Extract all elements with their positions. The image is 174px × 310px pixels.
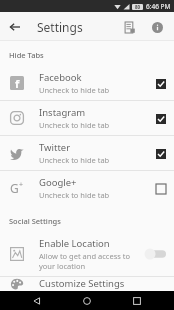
staticText: Allow to get and access to your location xyxy=(39,251,138,271)
staticText: Instagram xyxy=(39,106,86,119)
button[interactable]: Enable Location xyxy=(0,232,174,276)
button[interactable]: Checked xyxy=(155,78,166,89)
staticText: Google+ xyxy=(39,176,77,189)
staticText: Customize Settings xyxy=(39,277,125,290)
staticText: Social Settings xyxy=(9,216,61,226)
button[interactable]: Twitter xyxy=(0,136,174,170)
staticText: 6:46 PM xyxy=(146,2,171,11)
staticText: Hide Tabs xyxy=(9,50,44,60)
staticText: Facebook xyxy=(39,71,82,84)
staticText: Uncheck to hide tab xyxy=(39,120,110,130)
staticText: Uncheck to hide tab xyxy=(39,85,110,95)
staticText: 80 xyxy=(135,4,141,10)
staticText: G xyxy=(10,180,19,196)
button[interactable]: Unchecked xyxy=(155,183,166,194)
button[interactable]: Checked xyxy=(155,148,166,159)
staticText: Twitter xyxy=(39,141,71,154)
staticText: Enable Location xyxy=(39,237,110,250)
button[interactable]: Instagram xyxy=(0,101,174,135)
button[interactable]: G xyxy=(0,171,174,205)
button[interactable]: Home xyxy=(74,291,100,310)
staticText: Uncheck to hide tab xyxy=(39,190,110,200)
button[interactable]: Back xyxy=(24,291,50,310)
button[interactable]: Customize Settings xyxy=(0,277,174,291)
button[interactable]: f xyxy=(0,66,174,100)
button[interactable]: Checked xyxy=(155,113,166,124)
button[interactable]: Back xyxy=(0,12,29,41)
button[interactable]: Info xyxy=(143,13,171,41)
staticText: Settings xyxy=(37,19,83,35)
staticText: + xyxy=(19,180,24,190)
button[interactable]: Save xyxy=(115,13,143,41)
button[interactable]: Enable Location toggle xyxy=(144,248,166,260)
button[interactable]: Recents xyxy=(124,291,150,310)
staticText: Uncheck to hide tab xyxy=(39,155,110,165)
staticText: f xyxy=(15,76,20,90)
